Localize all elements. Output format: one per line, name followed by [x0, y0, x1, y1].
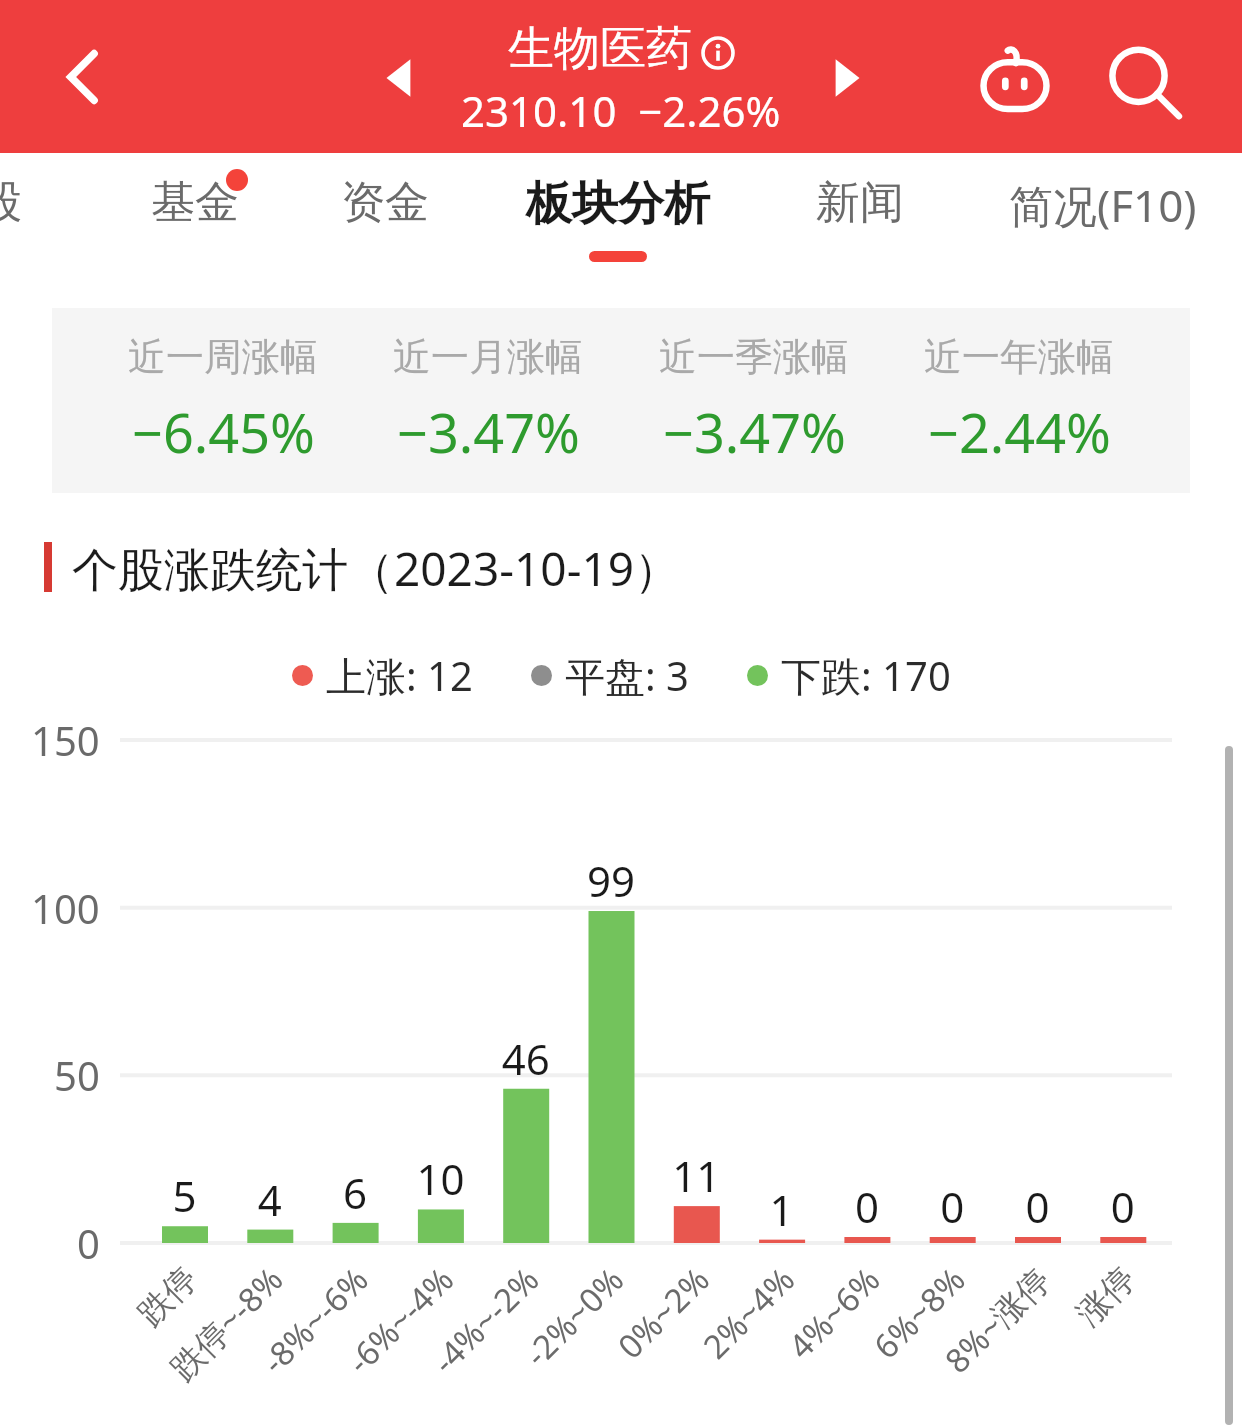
staticText: 近一周涨幅 — [128, 333, 318, 381]
button[interactable]: 股 — [0, 153, 46, 279]
button[interactable]: 板块分析 — [518, 153, 718, 279]
staticText: −2.44% — [928, 395, 1111, 469]
button[interactable]: Search — [1098, 38, 1188, 128]
staticText: 上涨: 12 — [326, 648, 473, 703]
button[interactable]: 基金 — [140, 153, 250, 279]
staticText: 板块分析 — [526, 175, 710, 233]
staticText: 基金 — [151, 175, 239, 230]
staticText: −3.47% — [663, 395, 846, 469]
button[interactable]: 资金 — [330, 153, 440, 279]
button[interactable]: AI assistant — [970, 38, 1060, 128]
button[interactable]: 近一周涨幅 — [52, 308, 1190, 493]
button[interactable]: Previous sector — [374, 52, 426, 104]
button[interactable]: Back — [45, 38, 123, 116]
staticText: 生物医药 — [508, 20, 692, 78]
staticText: −6.45% — [132, 395, 315, 469]
staticText: 下跌: 170 — [781, 648, 951, 703]
staticText: 个股涨跌统计（2023-10-19） — [72, 537, 681, 597]
staticText: −3.47% — [397, 395, 580, 469]
staticText: 资金 — [341, 175, 429, 230]
staticText: 新闻 — [816, 175, 904, 230]
staticText: 近一年涨幅 — [924, 333, 1114, 381]
staticText: 2310.10 −2.26% — [461, 82, 781, 139]
staticText: 股 — [0, 175, 22, 230]
button[interactable]: 下跌: 170 — [747, 648, 951, 703]
button[interactable]: 个股涨跌统计（2023-10-19） — [44, 537, 681, 597]
button[interactable]: 上涨: 12 — [292, 648, 473, 703]
staticText: 简况(F10) — [1009, 175, 1197, 235]
button[interactable]: 平盘: 3 — [531, 648, 689, 703]
staticText: 平盘: 3 — [565, 648, 689, 703]
button[interactable]: 新闻 — [805, 153, 915, 279]
button[interactable]: 简况(F10) — [995, 153, 1210, 279]
staticText: 近一月涨幅 — [393, 333, 583, 381]
button[interactable]: Next sector — [820, 52, 872, 104]
staticText: 近一季涨幅 — [659, 333, 849, 381]
